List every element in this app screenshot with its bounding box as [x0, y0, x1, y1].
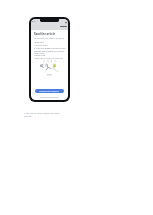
button[interactable]: Address bar	[60, 26, 67, 27]
staticText: Lorem ipsu	[34, 41, 44, 44]
staticText: Lorem ipsum dolorosa lorem nit	[34, 57, 63, 60]
staticText: 1. Ma in nisi qu	[34, 44, 48, 47]
staticText: A tiny line of small caption text goes h…	[24, 112, 64, 118]
staticText: Mauris et do	[34, 54, 46, 57]
staticText: Read the article	[34, 32, 56, 36]
staticText: Continue to checkout	[39, 90, 60, 93]
staticText: ▮▮	[65, 21, 67, 23]
staticText: 2. Cras iure tempor conse in lus nec cum…	[34, 47, 66, 54]
staticText: Some more info about a thing, etc	[34, 37, 65, 40]
staticText: 9:41	[32, 20, 36, 23]
button[interactable]: Continue to checkout	[35, 89, 64, 93]
